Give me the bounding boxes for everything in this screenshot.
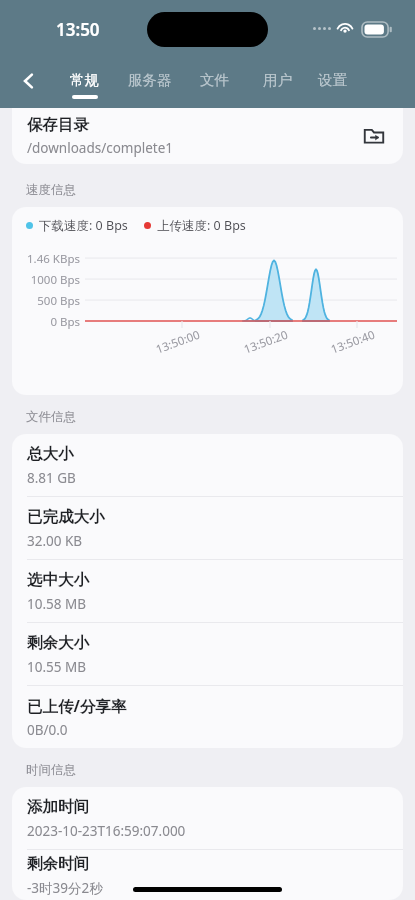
button[interactable]: Change directory [358, 120, 390, 152]
button[interactable]: 服务器 [124, 62, 176, 108]
staticText: 13:50:20 [242, 327, 290, 357]
staticText: 13:50:00 [154, 327, 202, 357]
staticText: 2023-10-23T16:59:07.000 [27, 822, 186, 840]
staticText: -3时39分2秒 [27, 879, 103, 897]
staticText: 上传速度: 0 Bps [157, 217, 246, 234]
staticText: 10.55 MB [27, 658, 87, 676]
staticText: 用户 [263, 71, 292, 89]
button[interactable]: 选中大小 [12, 560, 403, 622]
staticText: 服务器 [128, 71, 172, 89]
button[interactable]: 添加时间 [12, 787, 403, 849]
button[interactable]: 剩余大小 [12, 623, 403, 685]
button[interactable]: Back [10, 62, 48, 100]
staticText: 总大小 [27, 444, 74, 464]
staticText: 0 Bps [50, 314, 80, 330]
staticText: 1.46 KBps [27, 251, 80, 267]
button[interactable]: 已上传/分享率 [12, 686, 403, 748]
staticText: 32.00 KB [27, 532, 83, 550]
staticText: 保存目录 [27, 115, 89, 135]
staticText: 0B/0.0 [27, 721, 68, 739]
button[interactable]: 总大小 [12, 434, 403, 496]
staticText: 下载速度: 0 Bps [39, 217, 128, 234]
button[interactable]: 保存目录 [12, 108, 403, 164]
button[interactable]: 文件 [196, 62, 232, 108]
staticText: 1000 Bps [30, 272, 80, 288]
staticText: 剩余大小 [27, 633, 89, 653]
button[interactable]: 已完成大小 [12, 497, 403, 559]
staticText: 剩余时间 [27, 854, 89, 874]
button[interactable]: 设置 [314, 62, 350, 108]
button[interactable]: 用户 [259, 62, 295, 108]
staticText: 常规 [70, 71, 99, 89]
button[interactable]: 剩余时间 [12, 850, 403, 900]
staticText: 500 Bps [37, 293, 80, 309]
staticText: 速度信息 [26, 182, 76, 198]
staticText: 13:50 [56, 18, 100, 41]
staticText: 13:50:40 [329, 327, 377, 357]
staticText: 时间信息 [26, 762, 76, 778]
staticText: 选中大小 [27, 570, 89, 590]
staticText: 已上传/分享率 [27, 695, 127, 716]
staticText: 已完成大小 [27, 507, 105, 527]
staticText: 文件 [200, 71, 229, 89]
staticText: 8.81 GB [27, 469, 76, 487]
staticText: 添加时间 [27, 797, 89, 817]
staticText: 文件信息 [26, 409, 76, 425]
staticText: 设置 [318, 71, 347, 89]
staticText: /downloads/complete1 [27, 139, 174, 157]
staticText: 10.58 MB [27, 595, 87, 613]
button[interactable]: 常规 [66, 62, 102, 108]
